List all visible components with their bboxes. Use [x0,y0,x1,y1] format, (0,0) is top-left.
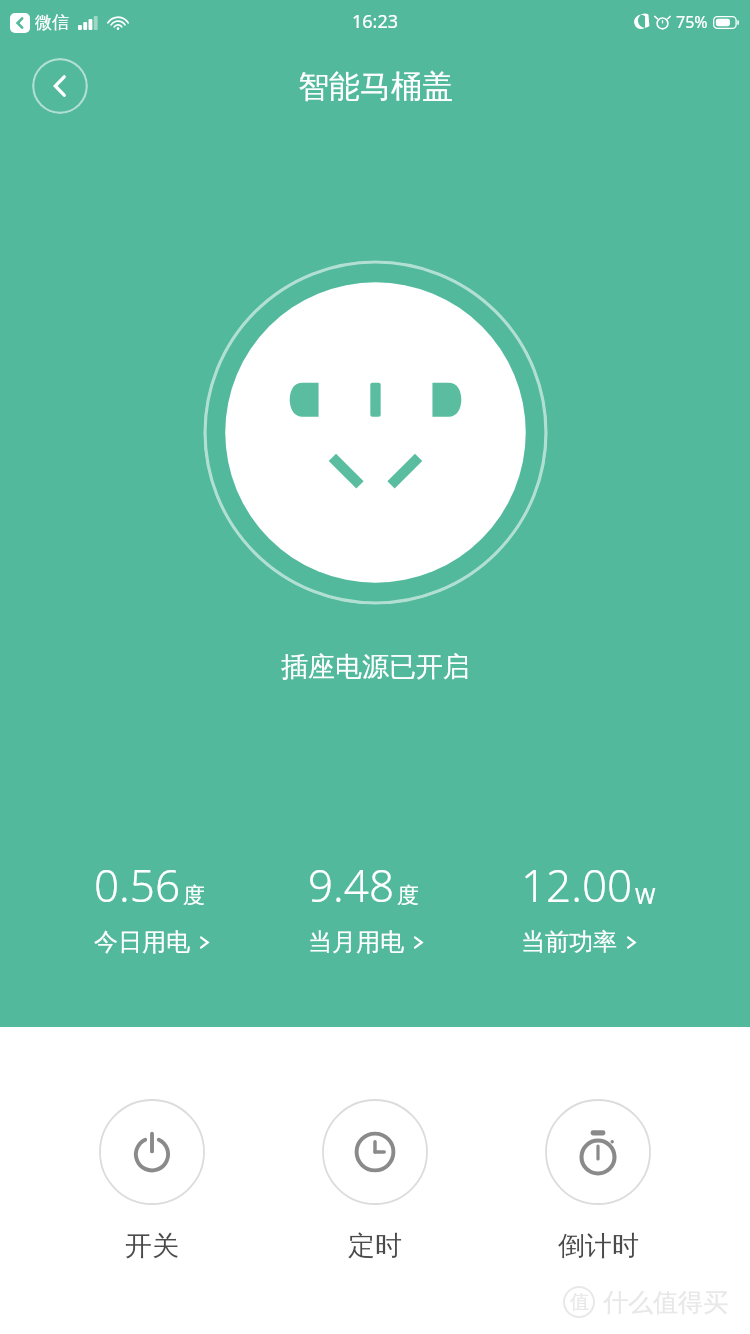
staticText: 75% [676,11,708,33]
button[interactable]: 返回 [32,58,88,114]
staticText: 开关 [125,1229,179,1263]
staticText: 度 [397,882,419,910]
staticText: 0.56 [94,855,181,915]
staticText: 当月用电 [308,927,404,957]
button[interactable]: 倒计时 [527,1095,669,1267]
staticText: 今日用电 [94,927,190,957]
staticText: W [635,880,656,910]
staticText: 什么值得买 [603,1287,728,1318]
staticText: 微信 [35,12,69,33]
button[interactable]: 12.00 [517,855,660,957]
staticText: 智能马桶盖 [298,67,453,106]
button[interactable]: 0.56 [90,855,214,957]
staticText: 值 [570,1290,589,1314]
button[interactable]: 电源开关 [81,1095,223,1267]
staticText: 16:23 [352,9,399,34]
staticText: 倒计时 [558,1229,639,1263]
button[interactable]: 定时 [304,1095,446,1267]
staticText: 插座电源已开启 [281,650,470,684]
staticText: 12.00 [521,855,633,915]
staticText: 定时 [348,1229,402,1263]
staticText: 9.48 [308,855,395,915]
button[interactable]: 插座电源开关 [203,260,548,605]
staticText: 当前功率 [521,927,617,957]
button[interactable]: 9.48 [304,855,428,957]
staticText: 度 [183,882,205,910]
